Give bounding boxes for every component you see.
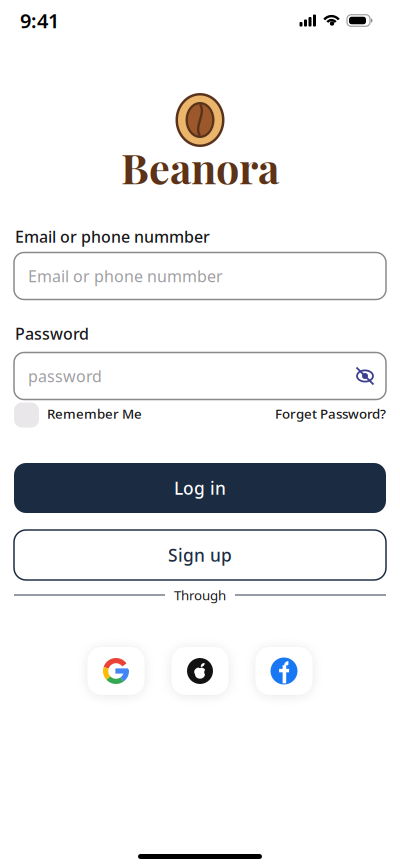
staticText: Email or phone nummber: [28, 265, 223, 287]
staticText: Sign up: [168, 543, 232, 566]
button[interactable]: Log in: [14, 463, 386, 513]
button[interactable]: [255, 647, 312, 695]
staticText: Email or phone nummber: [15, 226, 210, 247]
button[interactable]: [171, 647, 228, 695]
button[interactable]: password: [14, 352, 386, 399]
staticText: Beanora: [121, 139, 279, 195]
staticText: Remember Me: [47, 405, 142, 422]
button[interactable]: Forget Password?: [275, 406, 386, 424]
staticText: Log in: [174, 476, 226, 499]
button[interactable]: Remember Me: [14, 402, 142, 427]
button[interactable]: [354, 366, 376, 386]
staticText: 9:41: [20, 7, 59, 34]
button[interactable]: [87, 647, 144, 695]
staticText: Forget Password?: [275, 405, 386, 422]
staticText: password: [28, 365, 102, 387]
button[interactable]: Email or phone nummber: [14, 252, 386, 299]
staticText: Through: [174, 586, 226, 604]
button[interactable]: Sign up: [14, 530, 386, 580]
staticText: Password: [15, 323, 89, 344]
